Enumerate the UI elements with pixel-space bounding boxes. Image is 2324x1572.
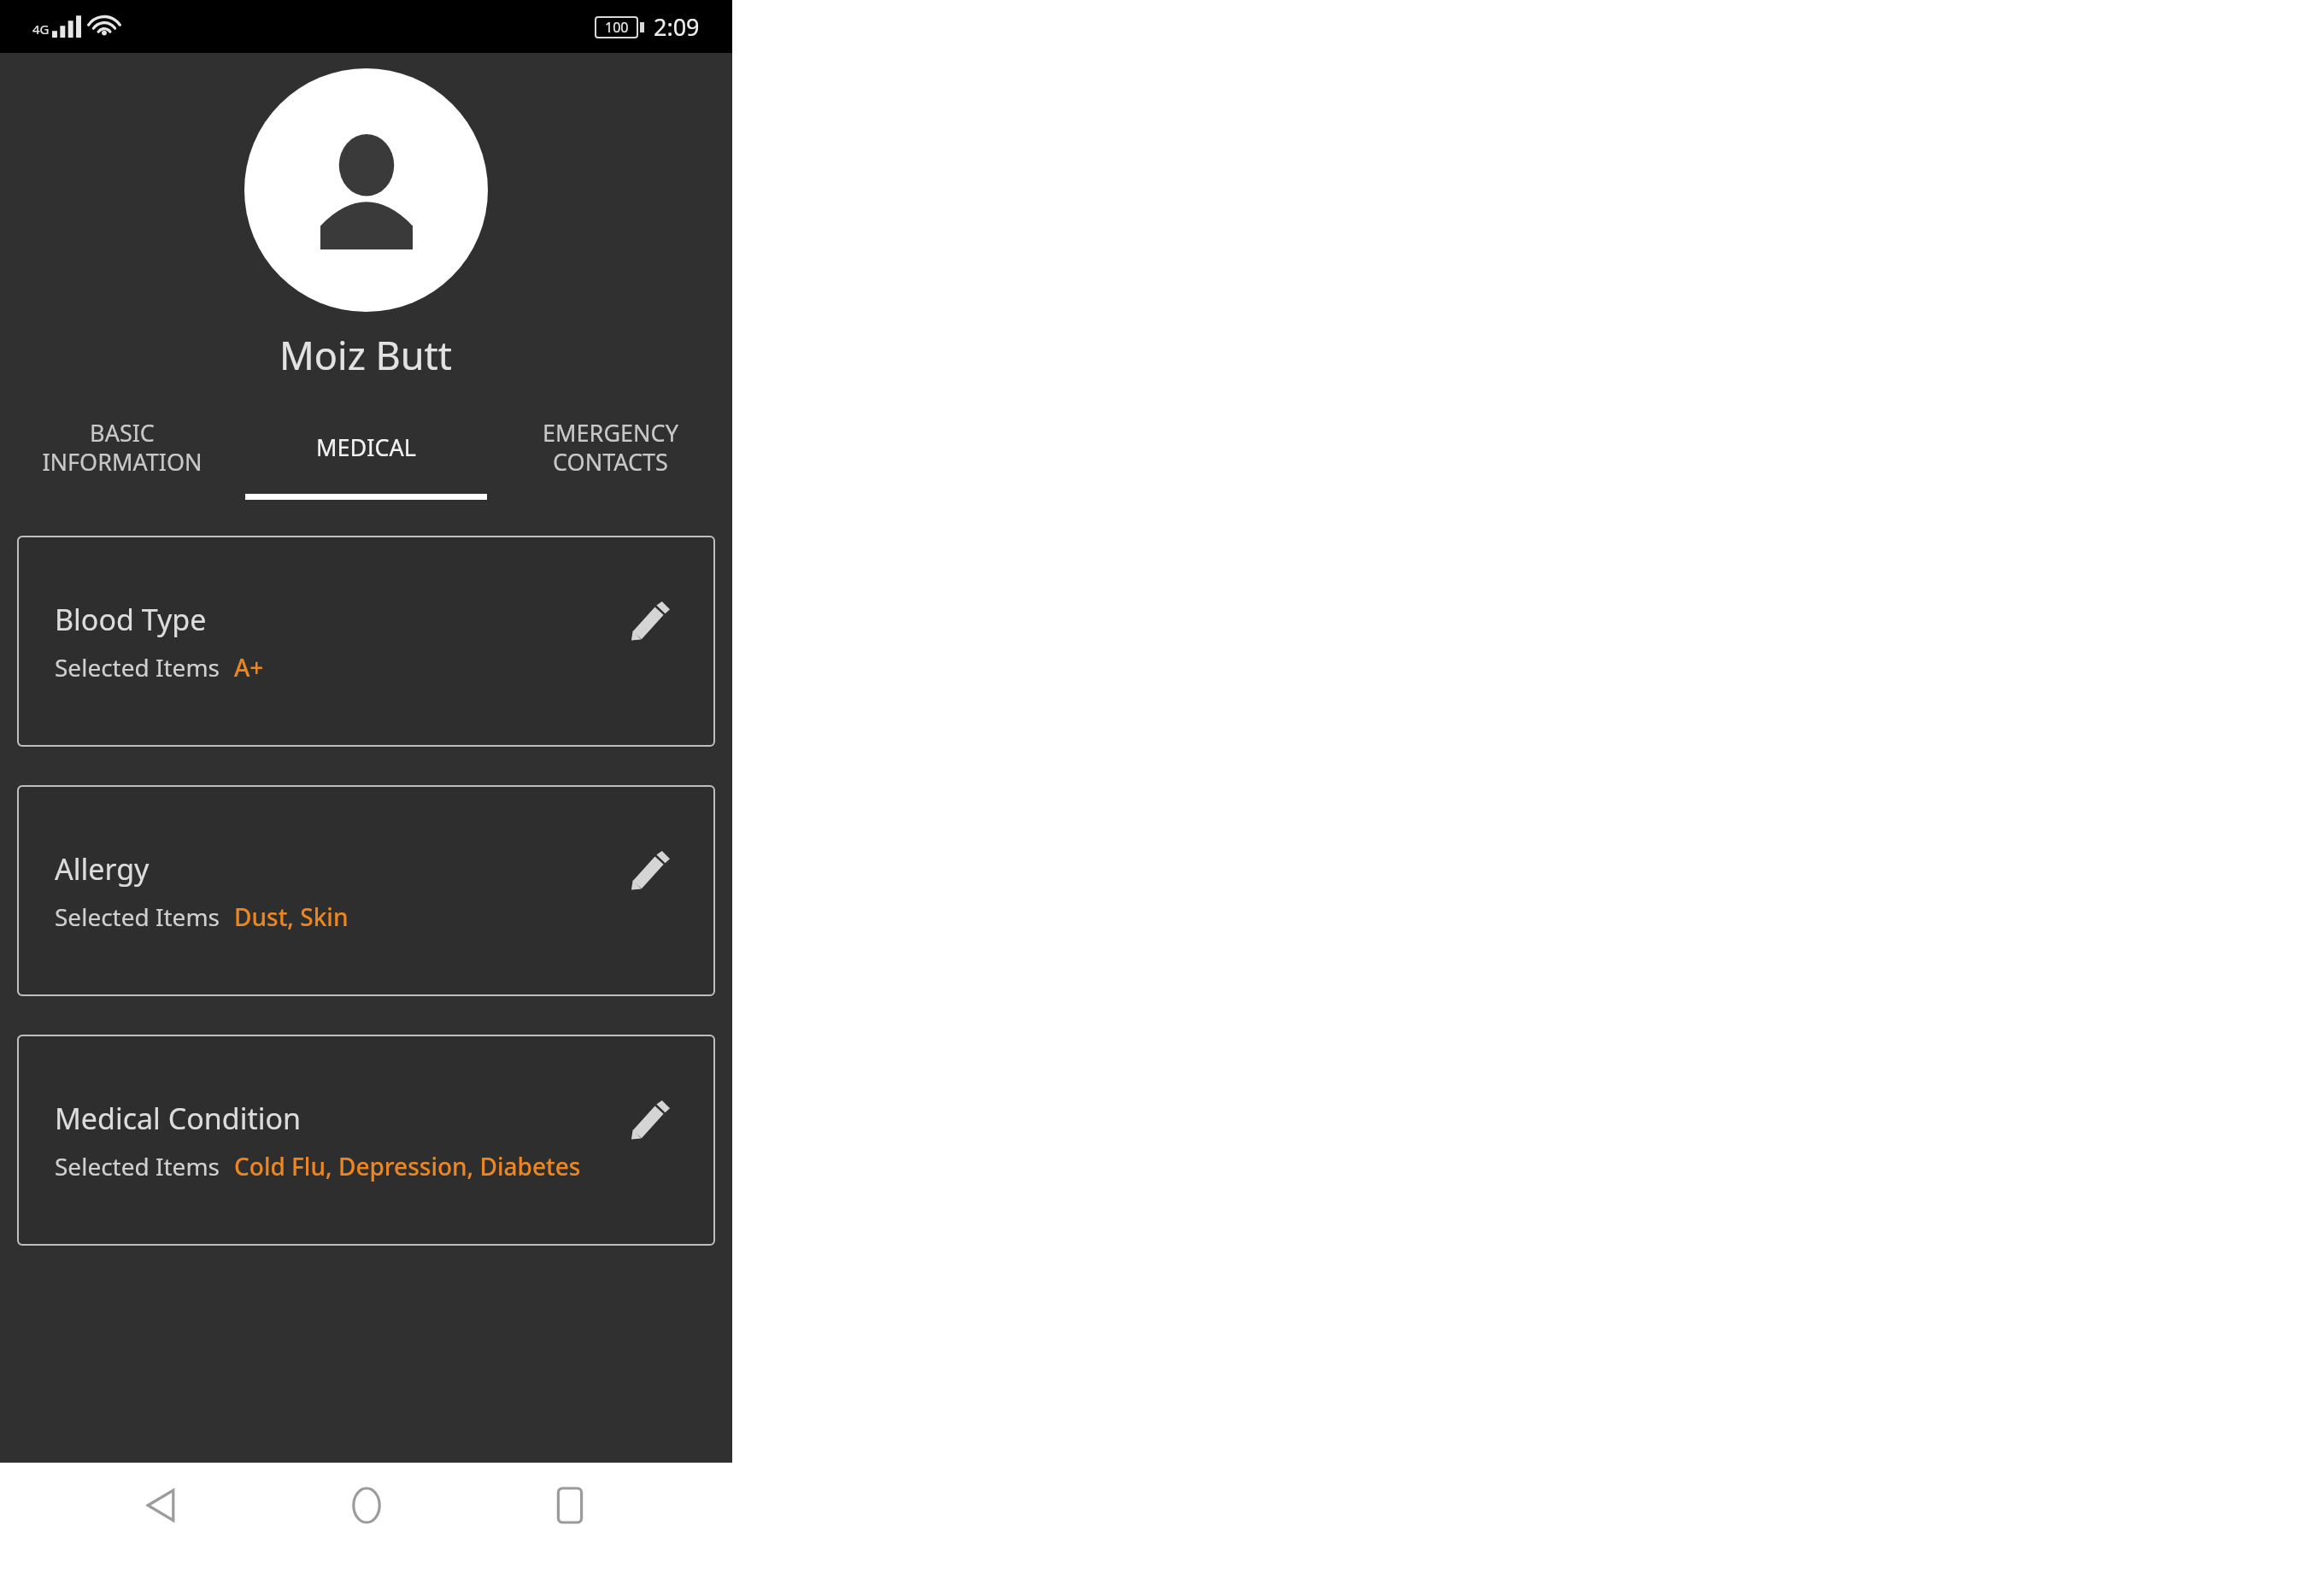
button[interactable]: Home (326, 1464, 408, 1546)
staticText: Cold Flu, Depression, Diabetes (234, 1150, 581, 1182)
button[interactable]: Profile photo (244, 68, 488, 312)
button[interactable]: Edit Blood Type (623, 594, 678, 648)
staticText: 100 (605, 18, 629, 37)
staticText: Moiz Butt (279, 329, 453, 381)
button[interactable]: Blood Type (17, 536, 715, 747)
button[interactable]: EMERGENCY CONTACTS (488, 400, 732, 494)
button[interactable]: Allergy (17, 785, 715, 996)
button[interactable]: Edit Medical Condition (623, 1093, 678, 1147)
staticText: A+ (234, 651, 264, 683)
staticText: MEDICAL (316, 431, 416, 463)
staticText: Selected Items (55, 651, 220, 683)
staticText: 4G (32, 21, 50, 38)
staticText: Blood Type (55, 600, 207, 639)
button[interactable]: Back (121, 1464, 203, 1546)
staticText: Allergy (55, 849, 150, 889)
button[interactable]: Edit Allergy (623, 843, 678, 898)
button[interactable]: Medical Condition (17, 1035, 715, 1246)
staticText: 2:09 (654, 11, 700, 43)
staticText: Medical Condition (55, 1099, 302, 1138)
staticText: Selected Items (55, 900, 220, 933)
staticText: Selected Items (55, 1150, 220, 1182)
button[interactable]: Recent apps (529, 1464, 611, 1546)
staticText: BASIC INFORMATION (42, 417, 202, 478)
button[interactable]: BASIC INFORMATION (0, 400, 244, 494)
staticText: Dust, Skin (234, 900, 349, 933)
staticText: EMERGENCY CONTACTS (543, 417, 678, 478)
button[interactable]: MEDICAL (244, 400, 488, 494)
